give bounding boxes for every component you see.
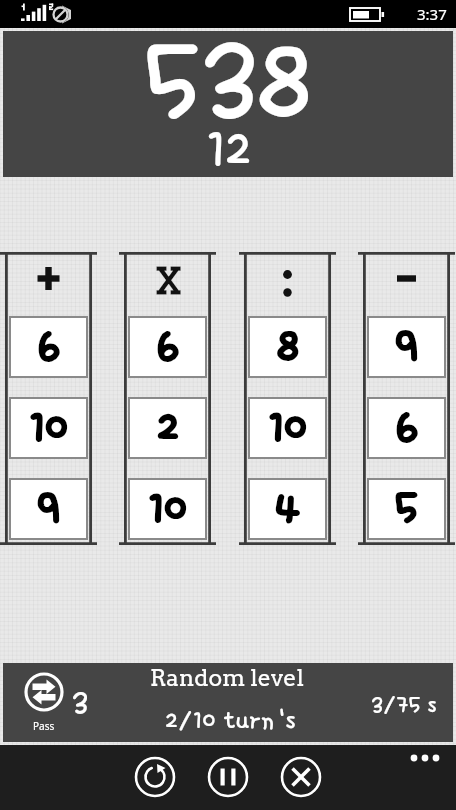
button[interactable]: Pause: [207, 756, 249, 798]
button[interactable]: 9: [369, 318, 444, 376]
staticText: 10: [29, 403, 68, 453]
staticText: 10: [29, 403, 68, 453]
staticText: 5: [395, 484, 418, 534]
staticText: X: [154, 258, 182, 303]
button[interactable]: 8: [250, 318, 325, 376]
staticText: 6: [157, 322, 179, 372]
staticText: 6: [157, 322, 179, 372]
staticText: 538: [144, 20, 312, 146]
button[interactable]: 6: [369, 399, 444, 457]
staticText: 6: [396, 403, 418, 453]
button[interactable]: 4: [250, 480, 325, 538]
button[interactable]: Close: [280, 756, 322, 798]
staticText: 6: [396, 403, 418, 453]
button[interactable]: 10: [130, 480, 205, 538]
staticText: 2: [157, 403, 179, 453]
staticText: 12: [206, 120, 251, 180]
staticText: 10: [148, 484, 187, 534]
staticText: 10: [148, 484, 187, 534]
button[interactable]: 6: [11, 318, 86, 376]
staticText: 9: [395, 322, 418, 372]
button[interactable]: 10: [250, 399, 325, 457]
button[interactable]: More options: [402, 745, 448, 771]
staticText: 6: [38, 322, 60, 372]
button[interactable]: Restart: [134, 756, 176, 798]
staticText: 6: [38, 322, 60, 372]
staticText: 3:37: [417, 4, 447, 24]
button[interactable]: 10: [11, 399, 86, 457]
staticText: Pass: [33, 719, 55, 733]
staticText: 9: [37, 484, 60, 534]
button[interactable]: 5: [369, 480, 444, 538]
staticText: 2/10 turn's: [165, 706, 296, 735]
staticText: 8: [277, 322, 299, 372]
staticText: 5: [395, 484, 418, 534]
staticText: 4: [275, 484, 300, 534]
staticText: 4: [275, 484, 300, 534]
button[interactable]: 6: [130, 318, 205, 376]
button[interactable]: Pass: [22, 673, 72, 733]
staticText: 10: [268, 403, 307, 453]
staticText: 10: [268, 403, 307, 453]
staticText: 9: [395, 322, 418, 372]
staticText: Random level: [150, 664, 305, 692]
button[interactable]: 9: [11, 480, 86, 538]
staticText: 8: [277, 322, 299, 372]
staticText: 3/75 s: [371, 692, 437, 718]
button[interactable]: 2: [130, 399, 205, 457]
staticText: 3: [72, 686, 88, 722]
staticText: 9: [37, 484, 60, 534]
staticText: 2: [157, 403, 179, 453]
